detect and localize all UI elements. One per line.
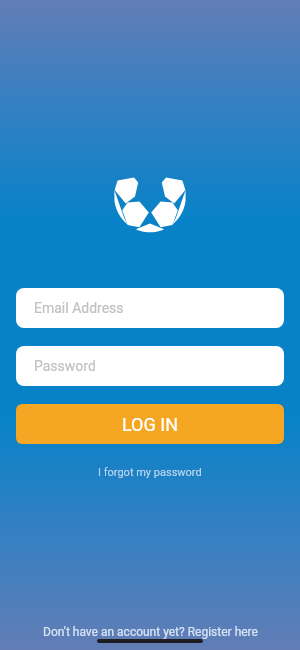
staticText: Don't have an account yet? Register here xyxy=(43,625,258,639)
other: App logo xyxy=(113,160,187,234)
button[interactable]: Password xyxy=(16,346,284,386)
button[interactable]: I forgot my password xyxy=(92,463,208,482)
button[interactable]: LOG IN xyxy=(16,404,284,444)
other: Home gesture bar xyxy=(97,639,203,643)
staticText: I forgot my password xyxy=(98,466,202,479)
staticText: LOG IN xyxy=(122,414,178,435)
staticText: Email Address xyxy=(34,300,124,316)
button[interactable]: Don't have an account yet? Register here xyxy=(35,623,266,641)
button[interactable]: Email Address xyxy=(16,288,284,328)
staticText: Password xyxy=(34,358,96,374)
